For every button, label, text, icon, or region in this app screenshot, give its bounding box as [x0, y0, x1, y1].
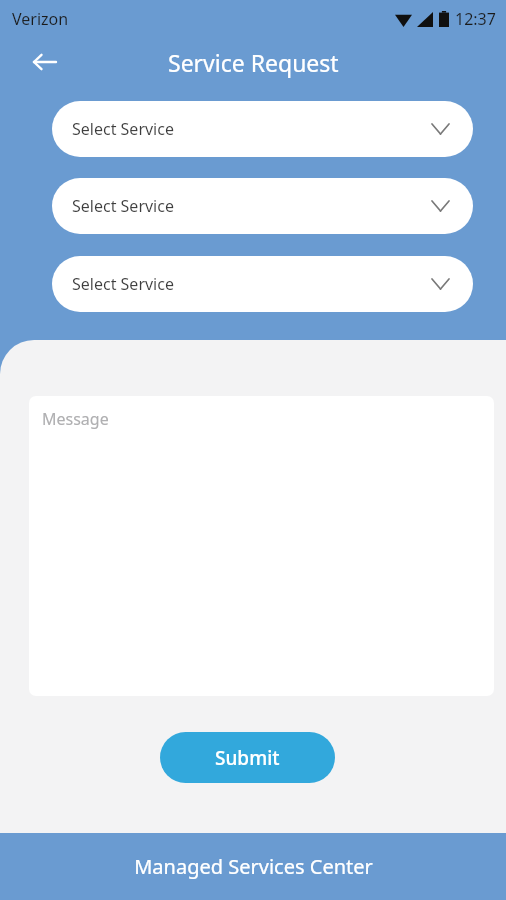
staticText: Service Request: [168, 47, 339, 78]
button[interactable]: Back: [22, 39, 68, 85]
staticText: Verizon: [12, 8, 69, 30]
button[interactable]: Select Service: [52, 178, 473, 234]
staticText: 12:37: [455, 8, 496, 30]
staticText: Select Service: [72, 118, 174, 140]
button[interactable]: Select Service: [52, 101, 473, 157]
staticText: Message: [42, 408, 109, 430]
button[interactable]: Managed Services Center: [0, 833, 506, 900]
staticText: Submit: [215, 745, 280, 771]
button[interactable]: Select Service: [52, 256, 473, 312]
staticText: Managed Services Center: [134, 853, 373, 880]
staticText: Select Service: [72, 195, 174, 217]
button[interactable]: Message: [29, 396, 494, 696]
button[interactable]: Submit: [160, 732, 335, 783]
staticText: Select Service: [72, 273, 174, 295]
